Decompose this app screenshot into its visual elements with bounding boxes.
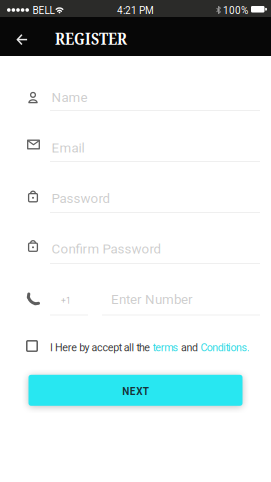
button[interactable]: Email [12,129,262,169]
staticText: Email [51,140,84,156]
button[interactable]: Name [12,78,262,118]
button[interactable]: NEXT [28,375,242,406]
staticText: 100% [223,5,248,16]
staticText: Enter Number [111,292,193,307]
staticText: Confirm Password [51,241,161,257]
button[interactable]: terms [153,341,179,354]
staticText: terms [153,341,179,354]
staticText: I Here by accept all the [50,341,153,354]
staticText: +1 [61,296,71,306]
staticText: Name [51,90,87,105]
button[interactable]: Back [10,28,33,51]
staticText: 4:21 PM [117,5,154,16]
staticText: Conditions. [200,341,250,354]
button[interactable]: Enter Number [12,280,262,320]
button[interactable]: Confirm Password [12,230,262,270]
button[interactable]: Conditions. [200,341,250,354]
staticText: REGISTER [55,28,127,49]
button[interactable]: Accept terms and conditions [26,340,38,352]
staticText: and [179,341,200,354]
staticText: Password [51,191,110,206]
button[interactable]: Password [12,179,262,219]
staticText: BELL [32,5,54,16]
staticText: NEXT [122,386,149,397]
